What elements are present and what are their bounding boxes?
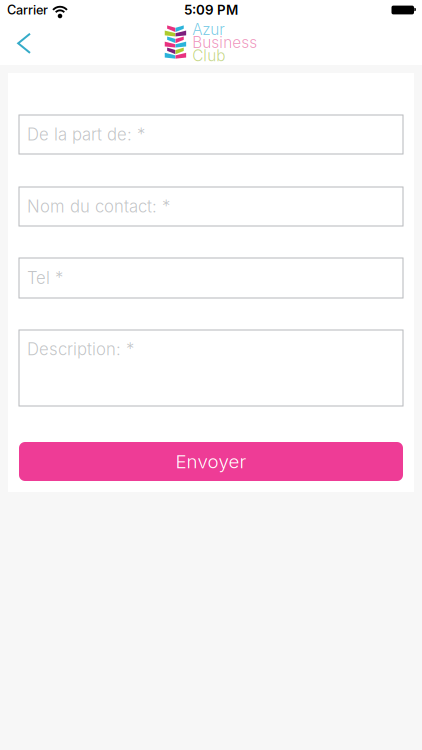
staticText: Carrier [7, 2, 48, 18]
staticText: De la part de: * [27, 124, 145, 145]
staticText: Business [192, 33, 257, 52]
staticText: 5:09 PM [184, 2, 238, 18]
staticText: Azur [192, 20, 225, 39]
staticText: Tel * [27, 268, 63, 288]
staticText: Description: * [27, 339, 134, 359]
button[interactable]: Envoyer [19, 442, 403, 481]
staticText: Nom du contact: * [27, 196, 170, 217]
button[interactable]: Nom du contact: * [19, 187, 403, 226]
button[interactable]: Back [0, 20, 44, 64]
staticText: Envoyer [175, 450, 246, 473]
staticText: Club [192, 46, 225, 65]
button[interactable]: De la part de: * [19, 115, 403, 154]
button[interactable]: Description: * [19, 330, 403, 406]
button[interactable]: Tel * [19, 258, 403, 298]
